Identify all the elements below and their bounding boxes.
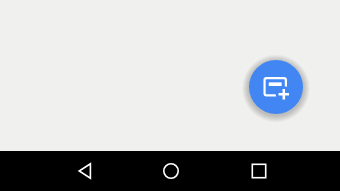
button[interactable]: Back <box>65 151 105 191</box>
button[interactable]: Add card <box>249 60 303 114</box>
button[interactable]: Home <box>150 151 191 191</box>
button[interactable]: Recent apps <box>239 151 279 191</box>
